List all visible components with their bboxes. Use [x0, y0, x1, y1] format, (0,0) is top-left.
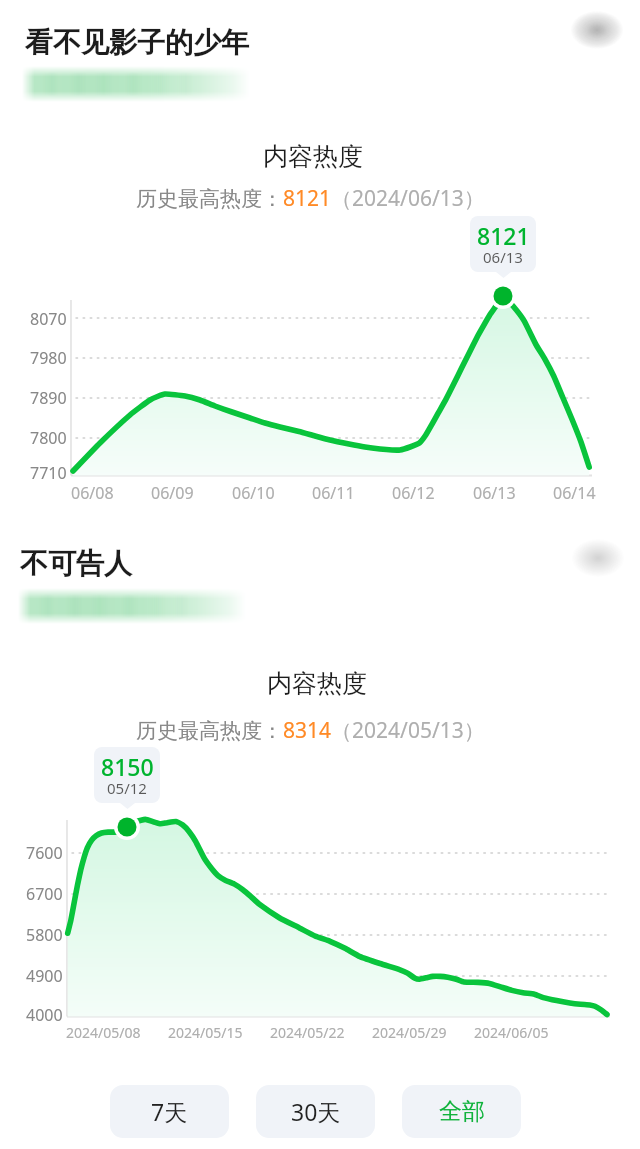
button[interactable]: 不可告人 [20, 546, 132, 581]
staticText: 6700 [26, 883, 63, 905]
staticText: 06/10 [232, 482, 275, 504]
staticText: 06/14 [553, 482, 596, 504]
staticText: 7980 [30, 347, 67, 369]
staticText: 不可告人 [20, 546, 132, 581]
button[interactable]: More options [568, 528, 628, 588]
staticText: 8150 [101, 751, 154, 782]
staticText: 06/11 [312, 482, 355, 504]
staticText: 06/13 [483, 247, 523, 267]
staticText: 历史最高热度：8121（2024/06/13） [136, 184, 485, 213]
staticText: 2024/05/22 [270, 1023, 345, 1042]
staticText: 看不见影子的少年 [25, 25, 249, 60]
staticText: 5800 [26, 924, 63, 946]
button[interactable] [18, 588, 246, 624]
staticText: 历史最高热度：8314（2024/05/13） [136, 716, 485, 745]
staticText: 8121 [477, 220, 530, 251]
staticText: 30天 [291, 1096, 341, 1127]
staticText: 7天 [151, 1096, 188, 1127]
staticText: 2024/06/05 [474, 1023, 549, 1042]
staticText: 7710 [30, 462, 67, 484]
staticText: 4000 [26, 1004, 63, 1026]
button[interactable]: 看不见影子的少年 [25, 25, 249, 60]
staticText: 内容热度 [267, 668, 367, 699]
staticText: 7800 [30, 427, 67, 449]
staticText: 7890 [30, 387, 67, 409]
staticText: 05/12 [107, 778, 147, 798]
staticText: 06/13 [473, 482, 516, 504]
button[interactable]: 8150 [94, 747, 160, 803]
staticText: 2024/05/15 [168, 1023, 243, 1042]
button[interactable]: 8121 [470, 216, 536, 272]
staticText: 2024/05/29 [372, 1023, 447, 1042]
staticText: 8070 [30, 308, 67, 330]
button[interactable]: 7天 [110, 1085, 229, 1138]
staticText: 06/12 [392, 482, 435, 504]
button[interactable] [22, 66, 250, 102]
staticText: 06/09 [151, 482, 194, 504]
staticText: 7600 [26, 842, 63, 864]
button[interactable]: More options [567, 0, 627, 60]
staticText: 06/08 [71, 482, 114, 504]
staticText: 内容热度 [263, 141, 363, 172]
staticText: 全部 [439, 1097, 485, 1126]
staticText: 4900 [26, 965, 63, 987]
staticText: 2024/05/08 [66, 1023, 141, 1042]
button[interactable]: 30天 [256, 1085, 375, 1138]
button[interactable]: 全部 [402, 1085, 521, 1138]
